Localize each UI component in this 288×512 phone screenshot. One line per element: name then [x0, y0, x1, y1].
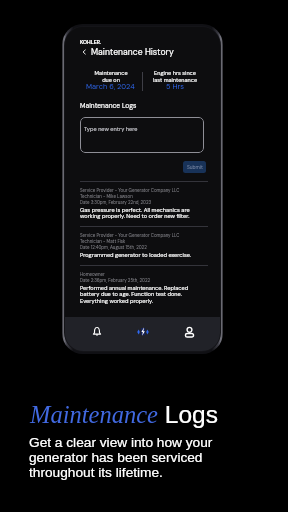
staticText: March 6, 2024 — [86, 82, 135, 92]
staticText: Technician - Matt Fisk — [80, 239, 126, 245]
staticText: Performed annual maintenance. Replaced b… — [80, 284, 189, 305]
staticText: Service Provider - Your Generator Compan… — [80, 233, 180, 239]
staticText: KOHLER. — [80, 39, 102, 46]
staticText: Date 12:40pm, August 15th, 2022 — [80, 245, 147, 251]
staticText: Service Provider - Your Generator Compan… — [80, 188, 180, 194]
staticText: Technician - Mike Lawson — [80, 194, 133, 200]
button[interactable]: Back — [80, 48, 88, 56]
button[interactable]: Profile — [166, 317, 212, 346]
staticText: Gas pressure is perfect. All mechanics a… — [80, 206, 190, 220]
staticText: Maintenance due on — [94, 70, 128, 84]
staticText: 5 Hrs — [166, 82, 184, 92]
staticText: Maintenance Logs — [80, 101, 137, 110]
staticText: Programmed generator to loaded exercise. — [80, 251, 192, 258]
staticText: Maintenance History — [91, 46, 174, 57]
staticText: Submit — [187, 164, 203, 170]
staticText: Logs — [158, 401, 218, 428]
button[interactable]: Type new entry here — [80, 117, 204, 153]
staticText: Type new entry here — [84, 125, 138, 132]
staticText: Date 3:30pm, February 22nd, 2023 — [80, 200, 152, 206]
staticText: Homeowner — [80, 272, 105, 278]
button[interactable]: Generator power — [120, 317, 166, 346]
button[interactable]: Submit — [183, 161, 206, 173]
button[interactable]: Notifications — [73, 317, 120, 346]
staticText: Engine hrs since last maintenance — [153, 70, 197, 84]
staticText: Maintenance — [30, 401, 158, 428]
staticText: Get a clear view into how your generator… — [29, 435, 219, 480]
staticText: Date 2:36pm, February 25th, 2022 — [80, 278, 151, 284]
